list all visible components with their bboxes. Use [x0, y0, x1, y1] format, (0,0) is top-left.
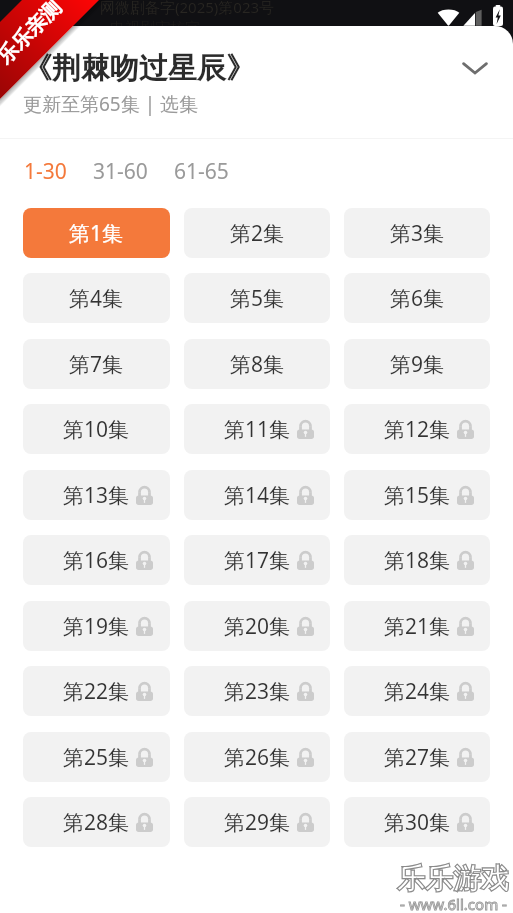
staticText: 第26集	[224, 743, 291, 772]
button[interactable]: 第26集	[184, 732, 330, 782]
staticText: 第22集	[63, 677, 130, 706]
button[interactable]: 第14集	[184, 470, 330, 520]
staticText: 第8集	[230, 350, 285, 379]
button[interactable]: 第15集	[344, 470, 490, 520]
button[interactable]: 第17集	[184, 535, 330, 585]
staticText: 第25集	[63, 743, 130, 772]
staticText: 第21集	[384, 612, 451, 641]
button[interactable]: 第30集	[344, 797, 490, 847]
button[interactable]: 第4集	[23, 273, 170, 323]
button[interactable]: 第8集	[184, 339, 330, 389]
staticText: 第12集	[384, 415, 451, 444]
staticText: 第24集	[384, 677, 451, 706]
staticText: 第28集	[63, 808, 130, 837]
button[interactable]: 第29集	[184, 797, 330, 847]
staticText: 第19集	[63, 612, 130, 641]
staticText: 第11集	[224, 415, 291, 444]
staticText: 第18集	[384, 546, 451, 575]
button[interactable]: 第16集	[23, 535, 170, 585]
staticText: 第27集	[384, 743, 451, 772]
button[interactable]: 31-60	[91, 154, 150, 189]
button[interactable]: 第1集	[23, 208, 170, 258]
staticText: 乐乐游戏	[397, 861, 509, 896]
button[interactable]: 61-65	[172, 154, 231, 189]
button[interactable]: Collapse	[455, 48, 495, 88]
button[interactable]: 第3集	[344, 208, 490, 258]
staticText: 第3集	[390, 219, 445, 248]
button[interactable]: 第20集	[184, 601, 330, 651]
staticText: 乐乐亲测	[0, 0, 66, 69]
staticText: 第14集	[224, 481, 291, 510]
button[interactable]: 第11集	[184, 404, 330, 454]
button[interactable]: 第22集	[23, 666, 170, 716]
staticText: 第6集	[390, 284, 445, 313]
staticText: 网微剧备字(2025)第023号	[100, 0, 275, 17]
button[interactable]: 第27集	[344, 732, 490, 782]
staticText: 《荆棘吻过星辰》	[23, 50, 255, 87]
staticText: 第17集	[224, 546, 291, 575]
staticText: 第29集	[224, 808, 291, 837]
button[interactable]: 第28集	[23, 797, 170, 847]
staticText: 第4集	[69, 284, 124, 313]
staticText: 31-60	[93, 157, 148, 186]
button[interactable]: 1-30	[22, 154, 69, 189]
button[interactable]: 第25集	[23, 732, 170, 782]
staticText: 第7集	[69, 350, 124, 379]
button[interactable]: 第21集	[344, 601, 490, 651]
button[interactable]: 第24集	[344, 666, 490, 716]
staticText: 第16集	[63, 546, 130, 575]
button[interactable]: 第13集	[23, 470, 170, 520]
staticText: 第2集	[230, 219, 285, 248]
button[interactable]: 第5集	[184, 273, 330, 323]
staticText: 电视剧审核字	[110, 19, 200, 38]
staticText: 第23集	[224, 677, 291, 706]
staticText: 第13集	[63, 481, 130, 510]
button[interactable]: 第6集	[344, 273, 490, 323]
staticText: 更新至第65集 | 选集	[23, 91, 199, 117]
staticText: - www.6ll.com -	[400, 894, 507, 913]
staticText: 第30集	[384, 808, 451, 837]
button[interactable]: 第2集	[184, 208, 330, 258]
button[interactable]: 第10集	[23, 404, 170, 454]
button[interactable]: 第9集	[344, 339, 490, 389]
button[interactable]: 第19集	[23, 601, 170, 651]
button[interactable]: 第12集	[344, 404, 490, 454]
staticText: 第1集	[69, 219, 124, 248]
staticText: 第20集	[224, 612, 291, 641]
staticText: 第9集	[390, 350, 445, 379]
button[interactable]: 第7集	[23, 339, 170, 389]
staticText: 61-65	[174, 157, 229, 186]
staticText: 第10集	[63, 415, 130, 444]
staticText: 第15集	[384, 481, 451, 510]
button[interactable]: 第23集	[184, 666, 330, 716]
staticText: 第5集	[230, 284, 285, 313]
staticText: 1-30	[24, 157, 67, 186]
button[interactable]: 第18集	[344, 535, 490, 585]
